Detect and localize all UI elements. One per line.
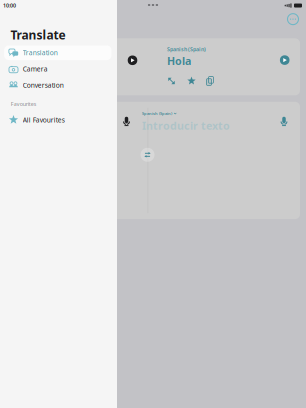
staticText: Spanish (Spain) (142, 111, 172, 116)
button[interactable]: Record source (111, 106, 142, 138)
button[interactable]: Copy (205, 76, 214, 85)
staticText: 10:00 (3, 2, 16, 9)
button[interactable]: Favourite (187, 76, 196, 85)
staticText: Translate (10, 27, 65, 43)
button[interactable]: Camera (4, 62, 111, 76)
staticText: Spanish (Spain) (167, 46, 206, 53)
button[interactable]: Play translation audio (272, 38, 300, 73)
staticText: Translation (23, 48, 58, 57)
button[interactable]: Translation (4, 45, 111, 60)
staticText: Conversation (23, 81, 64, 90)
button[interactable]: Play source audio (111, 38, 160, 95)
button[interactable]: All Favourites (4, 112, 111, 127)
button[interactable]: Conversation (4, 78, 111, 92)
button[interactable]: Swap languages (140, 148, 154, 162)
staticText: Introducir texto (142, 119, 230, 133)
staticText: Camera (23, 64, 48, 73)
staticText: All Favourites (23, 115, 65, 124)
staticText: Favourites (11, 100, 37, 107)
button[interactable]: Record translation (268, 106, 300, 138)
button[interactable]: More (282, 9, 304, 29)
button[interactable]: Expand (167, 76, 176, 85)
staticText: Hola (167, 54, 191, 68)
